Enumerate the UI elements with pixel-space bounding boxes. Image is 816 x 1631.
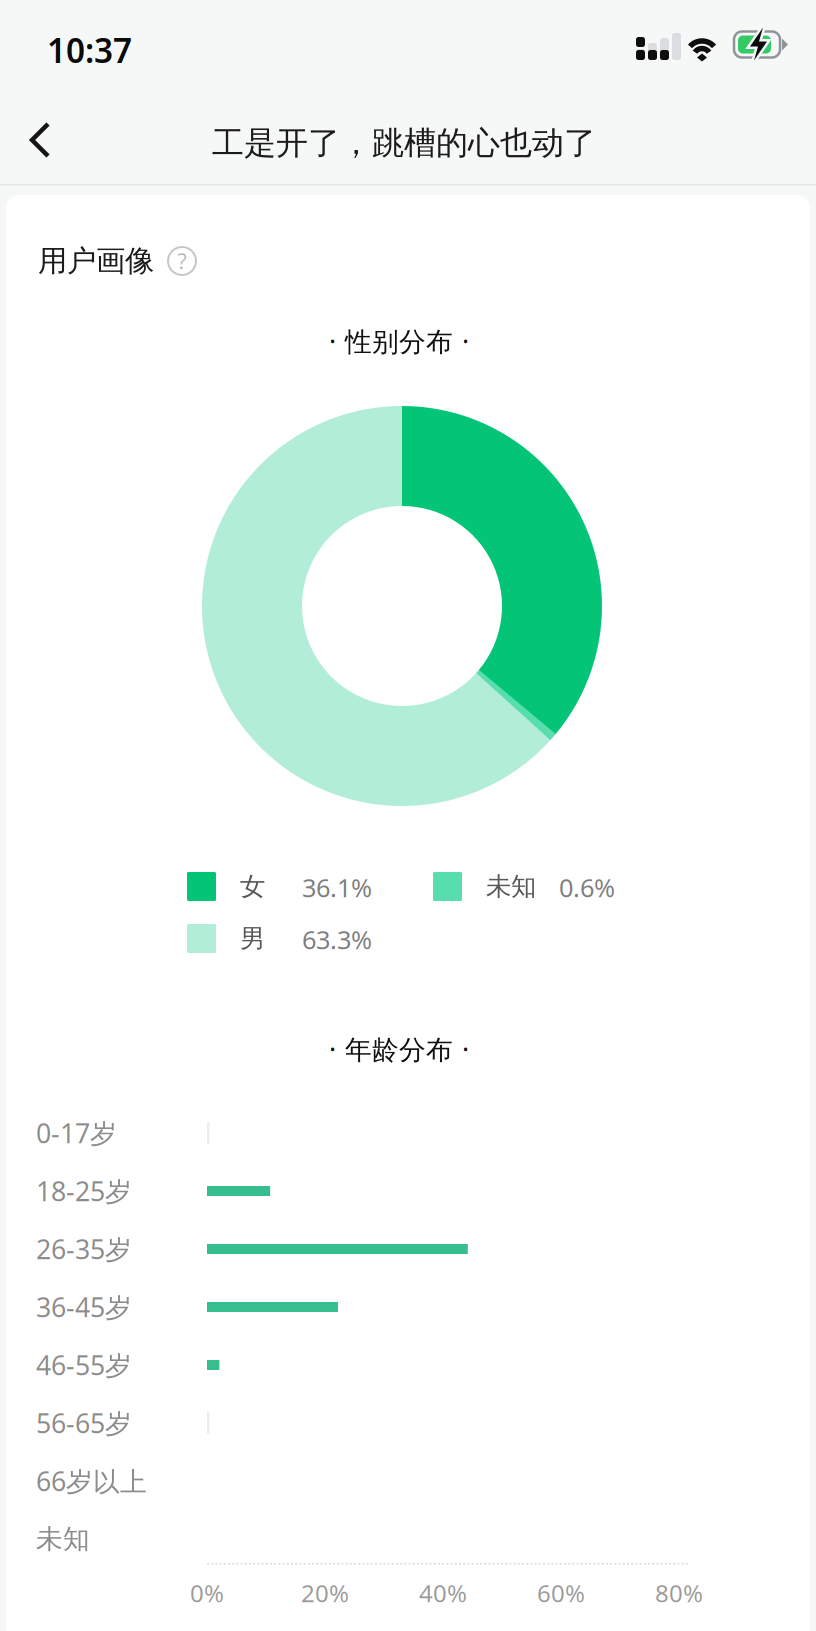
staticText: 66岁以上 [36,1463,147,1499]
staticText: 36.1% [302,871,372,904]
staticText: 女 [240,871,265,902]
staticText: 26-35岁 [36,1231,132,1267]
staticText: 0.6% [559,871,615,904]
staticText: 18-25岁 [36,1173,132,1209]
staticText: 56-65岁 [36,1405,132,1441]
staticText: · 年龄分布 · [329,1031,469,1067]
staticText: 36-45岁 [36,1289,132,1325]
staticText: 工是开了，跳槽的心也动了 [212,123,596,163]
staticText: 60% [537,1577,585,1609]
staticText: 0% [190,1577,224,1609]
button[interactable]: 返回 [4,96,76,184]
staticText: 40% [419,1577,467,1609]
staticText: 未知 [36,1523,90,1555]
staticText: 63.3% [302,923,372,956]
button[interactable]: 说明 [166,245,198,277]
staticText: 用户画像 [38,243,154,279]
staticText: 男 [240,923,265,954]
staticText: 10:37 [47,28,132,72]
staticText: 0-17岁 [36,1115,117,1151]
staticText: 20% [301,1577,349,1609]
staticText: 未知 [486,871,536,902]
staticText: 46-55岁 [36,1347,132,1383]
staticText: · 性别分布 · [329,323,469,359]
staticText: ? [177,247,186,275]
staticText: 80% [655,1577,703,1609]
